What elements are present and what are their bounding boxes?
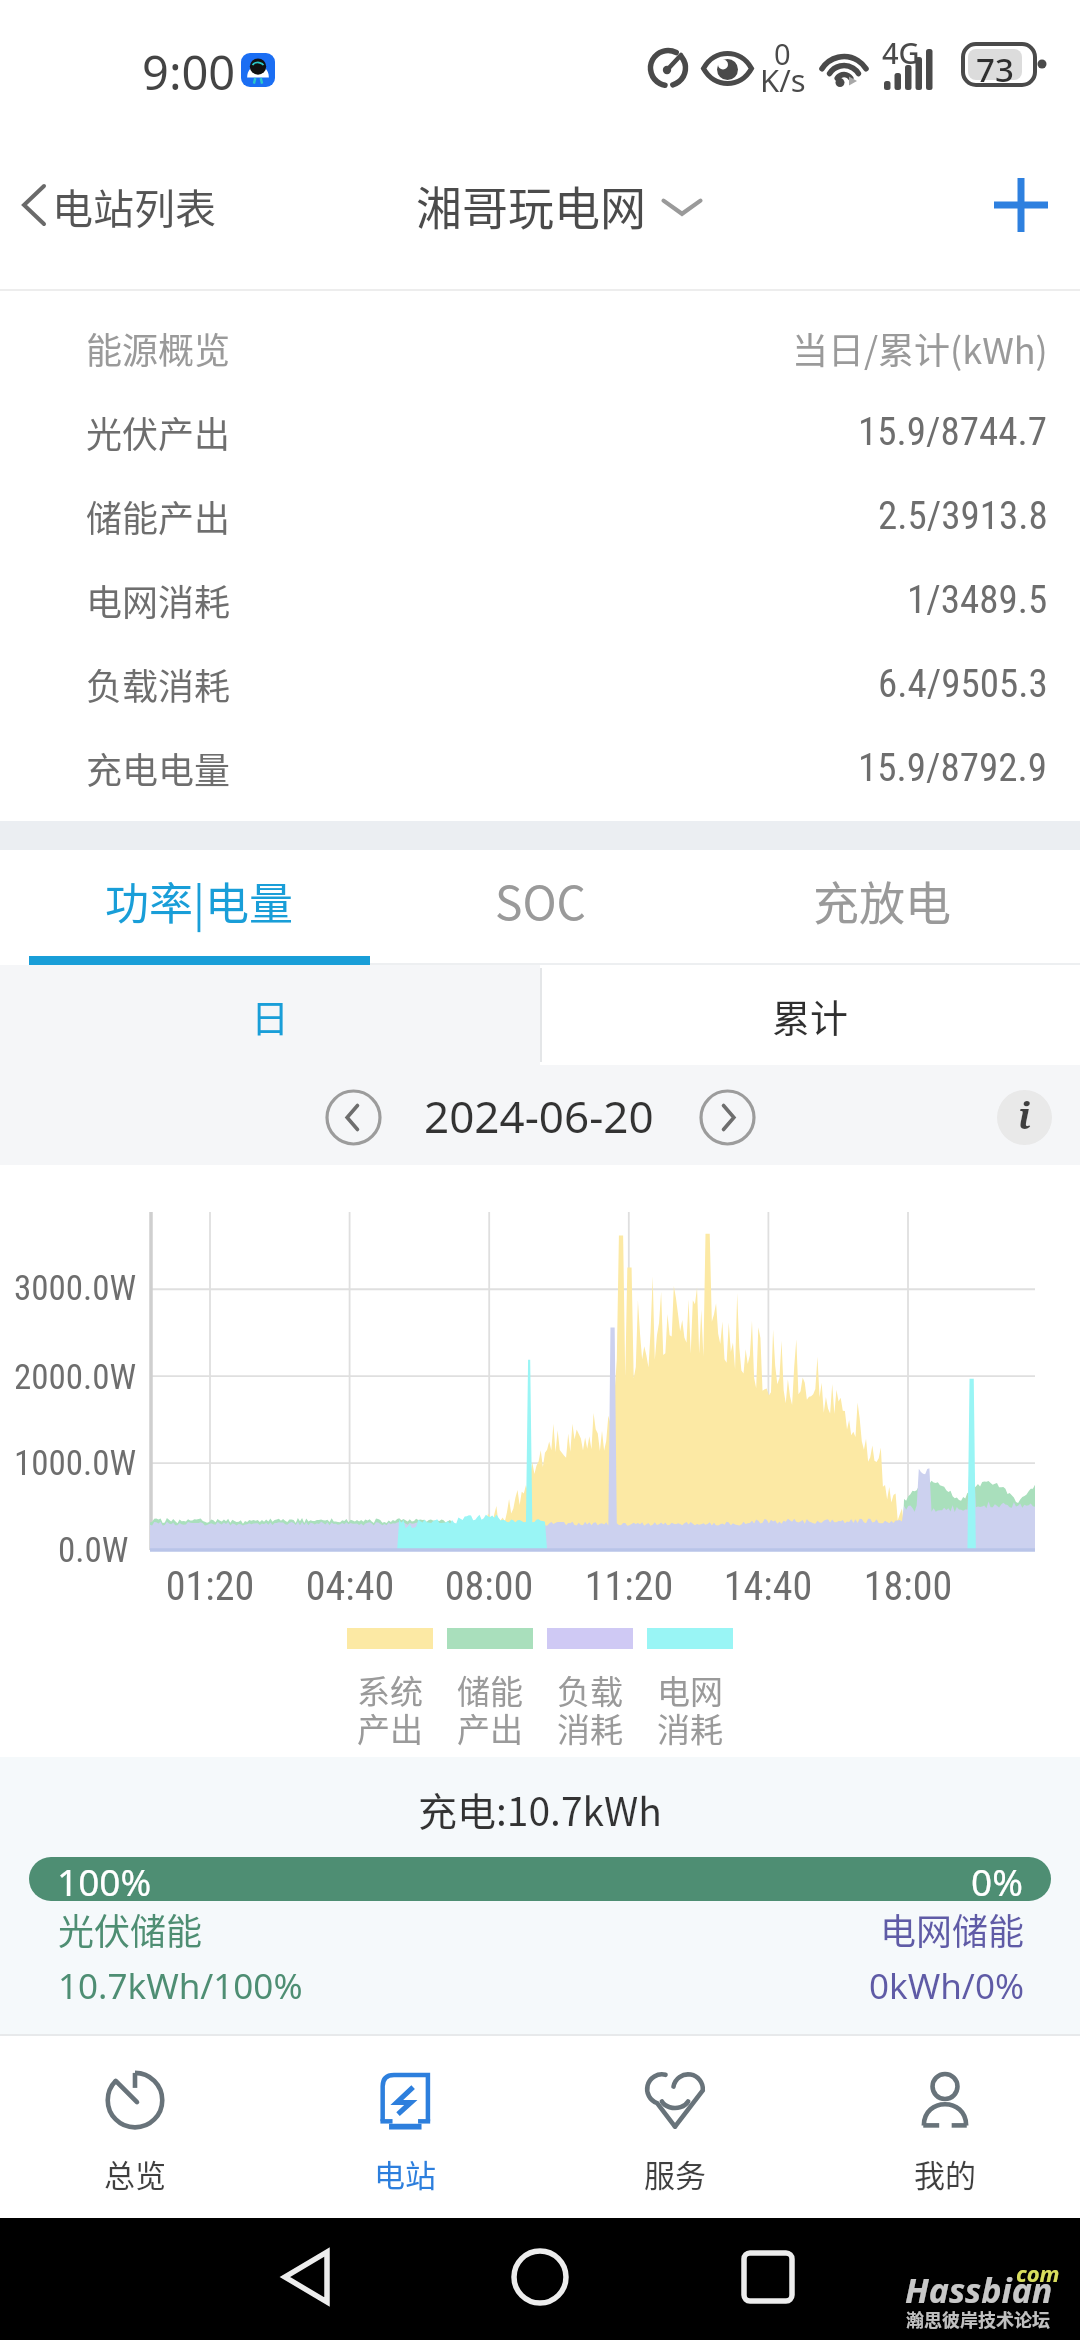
staticText: 充电:10.7kWh	[0, 1781, 1080, 1837]
staticText: 14:40	[708, 1563, 828, 1610]
staticText: 0.0W	[58, 1530, 129, 1571]
staticText: 15.9/8744.7	[858, 409, 1048, 455]
staticText: 2024-06-20	[424, 1086, 654, 1146]
button[interactable]: 负载消耗	[0, 642, 1080, 726]
button[interactable]: 我的	[810, 2036, 1080, 2218]
staticText: 9:00	[142, 40, 236, 104]
staticText: 当日/累计(kWh)	[792, 322, 1048, 374]
staticText: 累计	[772, 988, 849, 1043]
staticText: 湘哥玩电网	[416, 172, 646, 239]
staticText: 73	[976, 47, 1014, 92]
button[interactable]: 储能产出	[0, 474, 1080, 558]
button[interactable]: Next day	[699, 1089, 756, 1146]
staticText: 1000.0W	[14, 1443, 137, 1484]
staticText: 电网 消耗	[647, 1666, 733, 1752]
button[interactable]: 电站列表	[0, 160, 216, 250]
button[interactable]: 服务	[540, 2036, 810, 2218]
button[interactable]: SOC	[370, 850, 711, 965]
staticText: Hassbian	[905, 2267, 1053, 2313]
button[interactable]: 功率|电量	[28, 850, 370, 965]
staticText: 充电电量	[86, 742, 231, 794]
staticText: 15.9/8792.9	[858, 745, 1048, 791]
staticText: 光伏产出	[86, 406, 231, 458]
staticText: 6.4/9505.3	[878, 661, 1048, 707]
staticText: 2000.0W	[14, 1357, 137, 1398]
staticText: 储能产出	[86, 490, 231, 542]
staticText: SOC	[495, 867, 586, 934]
staticText: 08:00	[429, 1563, 549, 1610]
button[interactable]: Info	[997, 1090, 1052, 1145]
staticText: 3000.0W	[14, 1268, 137, 1309]
staticText: 0%	[971, 1857, 1023, 1900]
staticText: 充放电	[813, 867, 951, 934]
staticText: 01:20	[150, 1563, 270, 1610]
staticText: 2.5/3913.8	[878, 493, 1048, 539]
staticText: 1/3489.5	[907, 577, 1048, 623]
staticText: 负载 消耗	[547, 1666, 633, 1752]
staticText: 0kWh/0%	[0, 1962, 1024, 2010]
staticText: 服务	[644, 2151, 706, 2196]
staticText: 0	[774, 34, 791, 73]
staticText: i	[1018, 1091, 1031, 1140]
button[interactable]: 充放电	[711, 850, 1052, 965]
staticText: 储能 产出	[447, 1666, 533, 1752]
button[interactable]: 能源概览	[0, 306, 1080, 390]
button[interactable]: 电站	[270, 2036, 540, 2218]
staticText: 光伏储能	[58, 1903, 203, 1955]
staticText: 负载消耗	[86, 658, 231, 710]
staticText: 系统 产出	[347, 1666, 433, 1752]
button[interactable]: 电网消耗	[0, 558, 1080, 642]
staticText: 10.7kWh/100%	[58, 1962, 303, 2010]
staticText: 100%	[57, 1857, 152, 1900]
button[interactable]: 光伏产出	[0, 390, 1080, 474]
staticText: 电站	[374, 2151, 436, 2196]
button[interactable]: 累计	[540, 965, 1080, 1065]
staticText: 瀚思彼岸技术论坛	[906, 2306, 1050, 2332]
staticText: 电网储能	[0, 1903, 1024, 1955]
button[interactable]: Previous day	[325, 1089, 382, 1146]
button[interactable]: 充电电量	[0, 726, 1080, 810]
button[interactable]: Add station	[981, 165, 1061, 245]
staticText: com	[1016, 2258, 1060, 2288]
staticText: 功率|电量	[105, 869, 293, 933]
staticText: 11:20	[569, 1563, 689, 1610]
button[interactable]: 日	[0, 965, 540, 1065]
staticText: 4G	[882, 33, 920, 72]
staticText: 我的	[914, 2151, 976, 2196]
button[interactable]: 总览	[0, 2036, 270, 2218]
staticText: 电网消耗	[86, 574, 231, 626]
staticText: 能源概览	[86, 322, 231, 374]
staticText: 18:00	[848, 1563, 968, 1610]
staticText: 日	[251, 988, 290, 1043]
staticText: 电站列表	[52, 176, 216, 235]
staticText: 总览	[104, 2151, 166, 2196]
staticText: K/s	[760, 59, 806, 101]
staticText: 04:40	[290, 1563, 410, 1610]
button[interactable]: 湘哥玩电网	[416, 160, 704, 250]
